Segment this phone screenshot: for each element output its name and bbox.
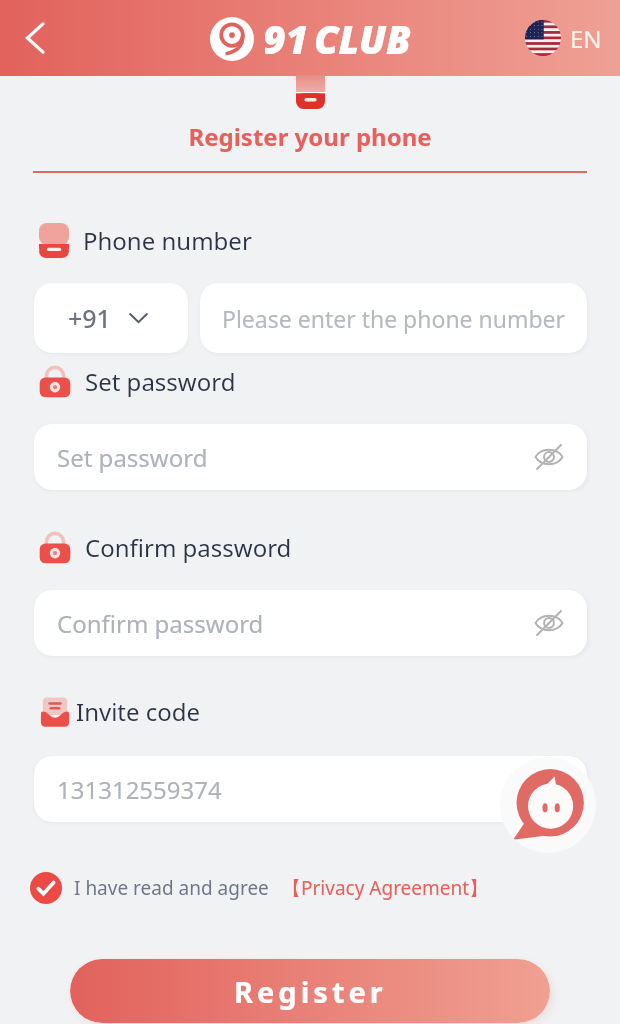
staticText: Set password <box>85 365 236 398</box>
button[interactable]: Confirm password <box>34 590 587 656</box>
button[interactable]: Toggle password visibility <box>527 601 571 645</box>
staticText: 【Privacy Agreement】 <box>282 875 489 901</box>
button[interactable]: I have read and agree <box>30 872 489 904</box>
staticText: 131312559374 <box>57 773 222 806</box>
staticText: Register your phone <box>188 120 432 153</box>
button[interactable]: EN <box>515 12 620 64</box>
button[interactable]: Set password <box>34 424 587 490</box>
button[interactable]: Register <box>70 959 550 1023</box>
staticText: Register <box>234 972 387 1011</box>
button[interactable]: Back <box>12 15 58 61</box>
staticText: Confirm password <box>85 531 292 564</box>
button[interactable]: Toggle password visibility <box>527 435 571 479</box>
staticText: Set password <box>57 441 208 474</box>
staticText: Invite code <box>76 695 201 728</box>
staticText: 91 <box>263 12 309 65</box>
staticText: I have read and agree <box>74 875 269 901</box>
button[interactable]: 131312559374 <box>34 756 587 822</box>
staticText: Please enter the phone number <box>222 303 566 334</box>
staticText: +91 <box>68 301 111 335</box>
button[interactable]: Please enter the phone number <box>200 283 587 353</box>
staticText: CLUB <box>314 12 411 65</box>
staticText: Phone number <box>83 224 252 257</box>
staticText: Confirm password <box>57 607 264 640</box>
button[interactable]: Customer service <box>500 757 596 853</box>
button[interactable]: Register by phone <box>296 75 325 109</box>
button[interactable]: +91 <box>34 283 188 353</box>
staticText: EN <box>570 22 602 55</box>
